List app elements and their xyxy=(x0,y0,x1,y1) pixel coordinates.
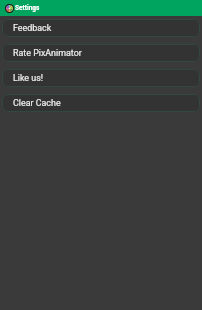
staticText: Settings xyxy=(15,4,40,12)
button[interactable]: Like us! xyxy=(2,69,200,87)
button[interactable]: Rate PixAnimator xyxy=(2,44,200,62)
staticText: Rate PixAnimator xyxy=(13,48,82,58)
button[interactable]: Feedback xyxy=(2,19,200,37)
button[interactable]: Clear Cache xyxy=(2,94,200,112)
button[interactable]: PixAnimator home xyxy=(0,0,44,16)
staticText: Feedback xyxy=(13,23,52,33)
staticText: Like us! xyxy=(13,73,44,83)
staticText: Clear Cache xyxy=(13,98,61,108)
